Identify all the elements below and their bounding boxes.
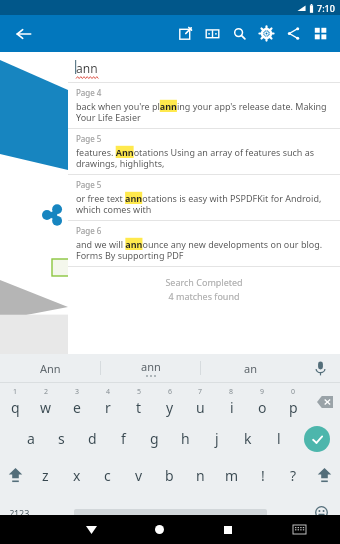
button[interactable]: 5 bbox=[123, 383, 154, 420]
button[interactable]: Shift bbox=[0, 457, 30, 494]
button[interactable]: n bbox=[185, 457, 216, 494]
staticText: p bbox=[289, 398, 298, 417]
staticText: ! bbox=[261, 466, 265, 485]
staticText: d bbox=[88, 429, 97, 448]
button[interactable]: z bbox=[30, 457, 61, 494]
staticText: i bbox=[230, 398, 234, 417]
button[interactable]: 1 bbox=[0, 383, 30, 420]
button[interactable]: Outline bbox=[199, 20, 226, 47]
button[interactable]: Enter bbox=[294, 420, 340, 457]
button[interactable]: 8 bbox=[216, 383, 247, 420]
button[interactable]: an bbox=[201, 354, 300, 382]
staticText: o bbox=[258, 398, 267, 417]
staticText: back when you're planning your app's rel… bbox=[76, 100, 336, 124]
staticText: , bbox=[53, 505, 57, 521]
staticText: Ann bbox=[40, 361, 61, 376]
button[interactable]: 4 bbox=[92, 383, 123, 420]
staticText: x bbox=[73, 466, 81, 485]
staticText: 9 bbox=[260, 387, 265, 397]
staticText: and we will announce any new development… bbox=[76, 238, 336, 262]
staticText: Page 5 bbox=[76, 133, 102, 144]
staticText: 7:10 bbox=[317, 2, 335, 14]
staticText: k bbox=[244, 429, 252, 448]
button[interactable]: b bbox=[154, 457, 185, 494]
staticText: s bbox=[58, 429, 65, 448]
staticText: b bbox=[165, 466, 174, 485]
staticText: 5 bbox=[137, 387, 142, 397]
button[interactable]: k bbox=[232, 420, 263, 457]
button[interactable]: g bbox=[139, 420, 170, 457]
staticText: v bbox=[135, 466, 143, 485]
button[interactable]: Shift bbox=[309, 457, 340, 494]
staticText: f bbox=[121, 429, 126, 448]
button[interactable]: Share bbox=[280, 20, 307, 47]
button[interactable]: 2 bbox=[30, 383, 61, 420]
button[interactable]: Page 4 bbox=[68, 83, 340, 128]
staticText: q bbox=[11, 398, 20, 417]
button[interactable]: f bbox=[108, 420, 139, 457]
staticText: ann bbox=[141, 359, 161, 374]
staticText: 7 bbox=[198, 387, 203, 397]
button[interactable]: Search bbox=[226, 20, 253, 47]
staticText: Page 5 bbox=[76, 179, 102, 190]
button[interactable]: 7 bbox=[185, 383, 216, 420]
staticText: 4 bbox=[106, 387, 111, 397]
button[interactable]: 6 bbox=[154, 383, 185, 420]
staticText: w bbox=[40, 398, 52, 417]
button[interactable]: Back bbox=[10, 20, 38, 48]
button[interactable]: Grid bbox=[307, 20, 334, 47]
button[interactable]: Keyboard bbox=[277, 515, 322, 544]
button[interactable]: Edit bbox=[172, 20, 199, 47]
staticText: l bbox=[277, 429, 281, 448]
staticText: t bbox=[136, 398, 142, 417]
button[interactable]: Page 6 bbox=[68, 221, 340, 266]
button[interactable]: c bbox=[92, 457, 123, 494]
button[interactable]: ! bbox=[247, 457, 278, 494]
button[interactable]: ann bbox=[101, 354, 200, 382]
button[interactable]: 9 bbox=[247, 383, 278, 420]
button[interactable]: Back bbox=[69, 515, 114, 544]
button[interactable]: v bbox=[123, 457, 154, 494]
staticText: z bbox=[42, 466, 49, 485]
button[interactable]: h bbox=[170, 420, 201, 457]
staticText: ?123 bbox=[10, 507, 30, 519]
staticText: n bbox=[196, 466, 205, 485]
button[interactable]: x bbox=[61, 457, 92, 494]
staticText: 8 bbox=[229, 387, 234, 397]
staticText: ? bbox=[290, 466, 297, 485]
button[interactable]: ?123 bbox=[0, 494, 39, 531]
staticText: a bbox=[27, 429, 35, 448]
button[interactable]: 3 bbox=[61, 383, 92, 420]
staticText: 1 bbox=[13, 387, 18, 397]
button[interactable]: Settings bbox=[253, 20, 280, 47]
button[interactable]: Recents bbox=[205, 515, 250, 544]
staticText: ann bbox=[76, 60, 98, 76]
button[interactable]: Ann bbox=[0, 354, 100, 382]
button[interactable]: . bbox=[271, 494, 302, 531]
button[interactable]: Voice input bbox=[300, 354, 340, 382]
staticText: 2 bbox=[44, 387, 49, 397]
staticText: e bbox=[73, 398, 81, 417]
staticText: h bbox=[181, 429, 190, 448]
staticText: or free text annotations is easy with PS… bbox=[76, 192, 336, 216]
button[interactable]: Space bbox=[70, 494, 271, 531]
button[interactable]: l bbox=[263, 420, 294, 457]
staticText: Page 4 bbox=[76, 87, 102, 98]
button[interactable]: ? bbox=[278, 457, 309, 494]
staticText: 3 bbox=[75, 387, 80, 397]
button[interactable]: 0 bbox=[278, 383, 309, 420]
staticText: u bbox=[196, 398, 205, 417]
button[interactable]: a bbox=[15, 420, 46, 457]
button[interactable]: m bbox=[216, 457, 247, 494]
staticText: j bbox=[215, 429, 219, 448]
button[interactable]: j bbox=[201, 420, 232, 457]
button[interactable]: s bbox=[46, 420, 77, 457]
button[interactable]: Emoji bbox=[302, 494, 340, 531]
button[interactable]: d bbox=[77, 420, 108, 457]
button[interactable]: , bbox=[39, 494, 70, 531]
button[interactable]: Home bbox=[137, 515, 182, 544]
staticText: c bbox=[104, 466, 111, 485]
button[interactable]: Page 5 bbox=[68, 175, 340, 220]
button[interactable]: Page 5 bbox=[68, 129, 340, 174]
button[interactable]: Backspace bbox=[309, 383, 340, 420]
